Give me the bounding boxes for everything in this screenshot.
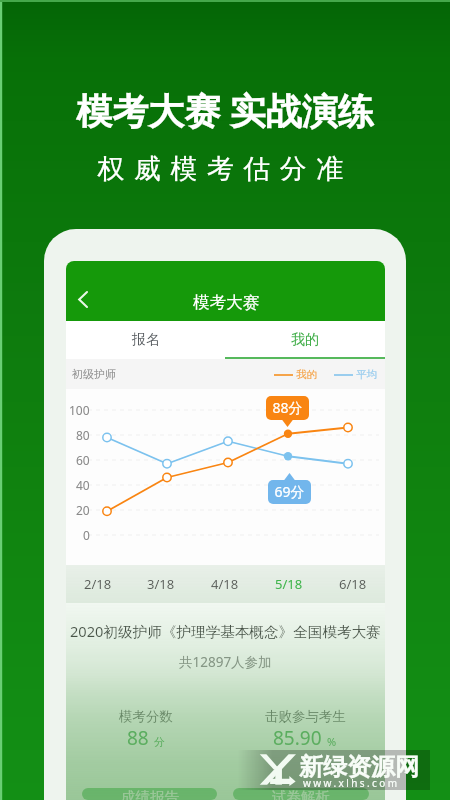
button[interactable]: 报名 [66, 321, 225, 359]
staticText: 初级护师 [72, 367, 116, 381]
button[interactable]: 3/18 [129, 565, 193, 603]
staticText: 击败参与考生 [265, 708, 346, 725]
staticText: 试卷解析 [272, 788, 330, 800]
button[interactable]: 5/18 [257, 565, 321, 603]
staticText: 新绿资源网 [299, 752, 419, 782]
staticText: 85.90 [273, 725, 322, 751]
staticText: 60 [76, 452, 90, 468]
staticText: 我的 [296, 368, 317, 381]
staticText: 共12897人参加 [179, 653, 272, 671]
button[interactable]: Back [66, 277, 100, 321]
staticText: 模考大赛 实战演练 [0, 86, 450, 135]
staticText: 我的 [291, 331, 319, 349]
staticText: 成绩报告 [121, 788, 179, 800]
button[interactable]: 模考分数 [66, 681, 225, 788]
staticText: 88分 [266, 398, 309, 417]
staticText: 模考大赛 [193, 292, 259, 313]
staticText: 0 [83, 527, 90, 543]
staticText: 模考分数 [119, 708, 173, 725]
staticText: 20 [76, 502, 90, 518]
staticText: 88 [127, 725, 149, 751]
staticText: 5/18 [275, 575, 303, 593]
button[interactable]: 6/18 [321, 565, 385, 603]
button[interactable]: 击败参与考生 [225, 681, 385, 788]
button[interactable]: 2/18 [66, 565, 129, 603]
staticText: 6/18 [339, 575, 367, 593]
staticText: 40 [76, 477, 90, 493]
staticText: www.xlhs.com [303, 776, 400, 790]
button[interactable]: 我的 [225, 321, 385, 359]
staticText: 报名 [132, 331, 160, 349]
staticText: 4/18 [211, 575, 239, 593]
staticText: 权威模考估分准 [0, 152, 450, 186]
staticText: 2/18 [84, 575, 112, 593]
staticText: 80 [76, 427, 90, 443]
staticText: 平均 [356, 368, 377, 381]
button[interactable]: 成绩报告 [82, 788, 217, 800]
staticText: 分 [154, 735, 165, 749]
staticText: 2020初级护师《护理学基本概念》全国模考大赛 [70, 621, 381, 641]
button[interactable]: 4/18 [193, 565, 257, 603]
staticText: 3/18 [147, 575, 175, 593]
staticText: 100 [69, 402, 90, 418]
staticText: % [327, 734, 337, 749]
button[interactable]: 试卷解析 [233, 788, 369, 800]
staticText: 69分 [268, 482, 311, 501]
